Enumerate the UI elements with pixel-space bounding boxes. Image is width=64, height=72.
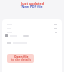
button[interactable] [7,23,57,26]
button[interactable] [7,41,57,44]
button[interactable] [7,31,57,34]
staticText: Just updated [21,1,44,6]
staticText: Open file [14,55,29,59]
other: File [5,34,8,37]
staticText: New PDF file [21,4,43,9]
button[interactable]: File [5,33,59,38]
button[interactable] [7,27,57,30]
button[interactable]: Open file [7,54,34,63]
staticText: to see details [11,58,31,62]
